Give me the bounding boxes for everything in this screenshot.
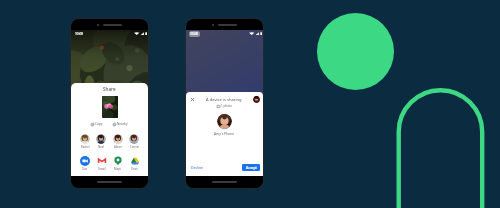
staticText: 1 photo: [221, 104, 232, 108]
staticText: Noel: [98, 145, 104, 149]
button[interactable]: Accept: [242, 164, 260, 171]
staticText: 10:00: [190, 32, 199, 36]
button[interactable]: Rachel: [80, 134, 90, 149]
button[interactable]: Maps: [112, 155, 123, 171]
staticText: Connie: [130, 145, 139, 149]
button[interactable]: Copy: [89, 121, 105, 127]
button[interactable]: Alison: [113, 134, 123, 149]
staticText: Drive: [131, 167, 138, 171]
staticText: Maps: [114, 167, 121, 171]
staticText: Share: [103, 86, 116, 92]
staticText: Nearby: [117, 122, 128, 126]
staticText: Accept: [246, 165, 257, 170]
staticText: 10:00: [75, 32, 84, 36]
button[interactable]: Duo: [79, 155, 90, 171]
button[interactable]: Connie: [129, 134, 139, 149]
staticText: Rachel: [81, 145, 90, 149]
button[interactable]: Account: [253, 96, 260, 103]
staticText: Amy's Phone: [214, 131, 235, 135]
button[interactable]: Decline: [189, 163, 205, 172]
button[interactable]: Drive: [129, 155, 140, 171]
staticText: Decline: [191, 165, 203, 170]
button[interactable]: Gmail: [96, 155, 107, 171]
staticText: A device is sharing: [206, 97, 242, 103]
button[interactable]: Nearby: [111, 121, 130, 127]
staticText: Duo: [82, 167, 88, 171]
button[interactable]: Noel: [96, 134, 106, 149]
staticText: Gmail: [98, 167, 106, 171]
staticText: Alison: [114, 145, 122, 149]
button[interactable]: Close: [189, 96, 196, 103]
staticText: Copy: [95, 122, 103, 126]
